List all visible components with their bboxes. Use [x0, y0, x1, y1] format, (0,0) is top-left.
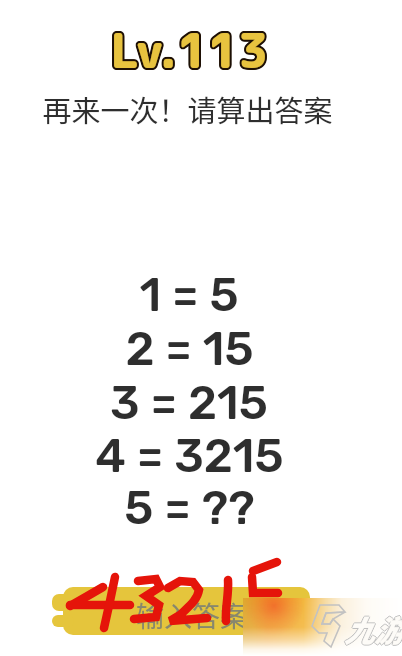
staticText: Lv.113	[109, 16, 268, 82]
staticText: Lv.113	[109, 19, 268, 85]
staticText: 输入答案	[136, 595, 249, 636]
staticText: Lv.113	[110, 17, 269, 83]
staticText: Lv.113	[112, 16, 271, 82]
staticText: 九游	[344, 608, 402, 651]
staticText: Lv.113	[112, 17, 271, 83]
staticText: Lv.113	[112, 18, 271, 84]
staticText: 4 = 3215	[95, 428, 284, 484]
staticText: 3 = 215	[110, 375, 268, 431]
staticText: Lv.113	[110, 15, 269, 81]
staticText: 九游	[344, 607, 402, 650]
staticText: Lv.113	[110, 19, 269, 85]
staticText: Lv.113	[109, 18, 268, 84]
staticText: 九游	[345, 607, 402, 650]
staticText: Lv.113	[111, 18, 270, 84]
staticText: Lv.113	[108, 17, 267, 83]
staticText: 再来一次！请算出答案	[42, 88, 333, 130]
staticText: Lv.113	[111, 15, 270, 81]
staticText: 九游	[343, 607, 402, 650]
staticText: 2 = 15	[125, 321, 254, 377]
staticText: Lv.113	[111, 19, 270, 85]
staticText: Lv.113	[108, 16, 267, 82]
button[interactable]: 输入答案	[30, 556, 320, 646]
staticText: Lv.113	[108, 18, 267, 84]
staticText: 九游	[344, 606, 402, 649]
staticText: Lv.113	[111, 16, 270, 82]
staticText: 1 = 5	[139, 267, 239, 323]
staticText: Lv.113	[109, 15, 268, 81]
staticText: 5 = ??	[124, 480, 255, 536]
